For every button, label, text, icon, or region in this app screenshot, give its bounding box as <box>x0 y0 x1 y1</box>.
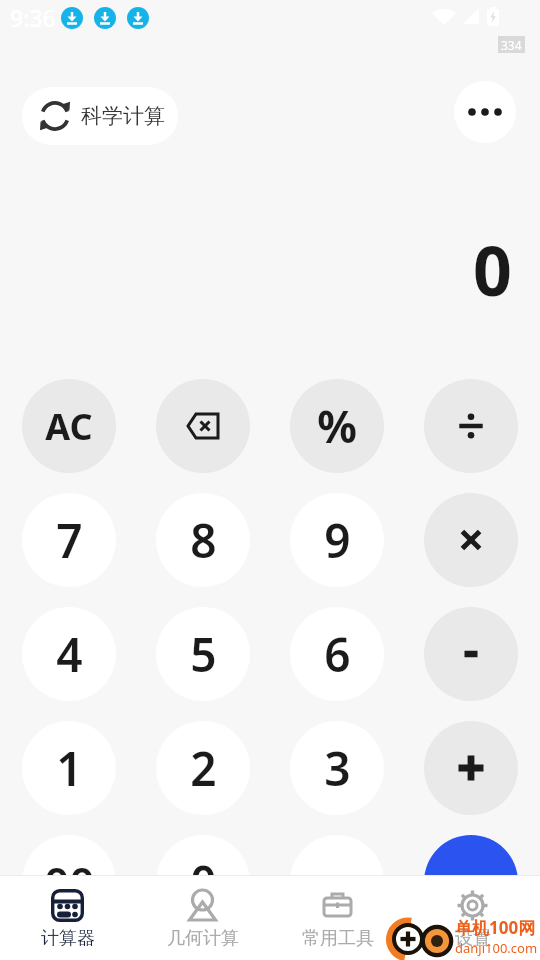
staticText: 计算器 <box>41 927 95 950</box>
button[interactable]: 00 <box>22 835 116 929</box>
staticText: 4 <box>56 623 83 686</box>
staticText: danji100.com <box>455 939 538 957</box>
button[interactable] <box>424 493 518 587</box>
staticText: 1 <box>56 737 83 800</box>
button[interactable]: 计算器 <box>0 876 135 960</box>
button[interactable] <box>424 721 518 815</box>
button[interactable]: 9 <box>290 493 384 587</box>
staticText: 7 <box>56 509 83 572</box>
staticText: 0 <box>473 223 512 316</box>
button[interactable]: 8 <box>156 493 250 587</box>
button[interactable]: 4 <box>22 607 116 701</box>
button[interactable] <box>156 379 250 473</box>
staticText: 2 <box>190 737 217 800</box>
button[interactable]: 3 <box>290 721 384 815</box>
button[interactable]: 科学计算 <box>22 87 178 145</box>
staticText: 单机100网 <box>455 916 536 939</box>
button[interactable] <box>424 607 518 701</box>
button[interactable]: 设置 <box>405 876 540 960</box>
staticText: 9:36 <box>10 2 56 33</box>
staticText: 9 <box>324 509 351 572</box>
staticText: . <box>331 851 344 914</box>
staticText: 8 <box>190 509 217 572</box>
staticText: % <box>317 396 357 456</box>
staticText: 334 <box>501 37 522 53</box>
staticText: 00 <box>44 852 95 912</box>
button[interactable] <box>424 379 518 473</box>
staticText: 3 <box>324 737 351 800</box>
staticText: 0 <box>190 851 217 914</box>
button[interactable]: AC <box>22 379 116 473</box>
button[interactable]: 1 <box>22 721 116 815</box>
button[interactable]: 6 <box>290 607 384 701</box>
button[interactable]: . <box>290 835 384 929</box>
button[interactable]: 2 <box>156 721 250 815</box>
staticText: 常用工具 <box>302 927 374 950</box>
button[interactable] <box>424 835 518 929</box>
button[interactable]: % <box>290 379 384 473</box>
staticText: 设置 <box>455 927 491 950</box>
button[interactable]: 几何计算 <box>135 876 270 960</box>
staticText: 几何计算 <box>167 927 239 950</box>
staticText: 科学计算 <box>81 103 165 129</box>
button[interactable]: 常用工具 <box>270 876 405 960</box>
button[interactable]: 7 <box>22 493 116 587</box>
button[interactable] <box>454 81 516 143</box>
staticText: 6 <box>324 623 351 686</box>
staticText: AC <box>45 402 93 451</box>
button[interactable]: 5 <box>156 607 250 701</box>
staticText: 5 <box>190 623 217 686</box>
button[interactable]: 0 <box>156 835 250 929</box>
